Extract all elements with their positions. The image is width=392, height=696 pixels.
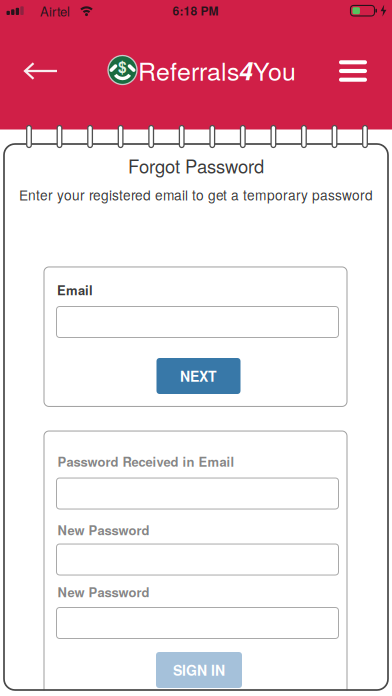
staticText: New Password [57,583,149,601]
staticText: Referrals [138,52,239,88]
button[interactable]: Back [17,49,65,93]
staticText: Forgot Password [128,152,264,179]
button[interactable]: SIGN IN [156,652,242,688]
staticText: Email [57,281,93,299]
staticText: 6:18 PM [172,2,218,19]
staticText: Airtel [40,1,70,20]
staticText: New Password [57,521,149,539]
button[interactable]: Menu [331,49,375,93]
staticText: $ [118,55,127,77]
staticText: 4 [239,52,253,88]
button[interactable]: NEXT [156,358,240,394]
staticText: NEXT [180,366,217,386]
staticText: Password Received in Email [57,452,234,471]
staticText: SIGN IN [173,660,225,680]
staticText: You [253,52,296,88]
staticText: Enter your registered email to get a tem… [19,185,373,204]
